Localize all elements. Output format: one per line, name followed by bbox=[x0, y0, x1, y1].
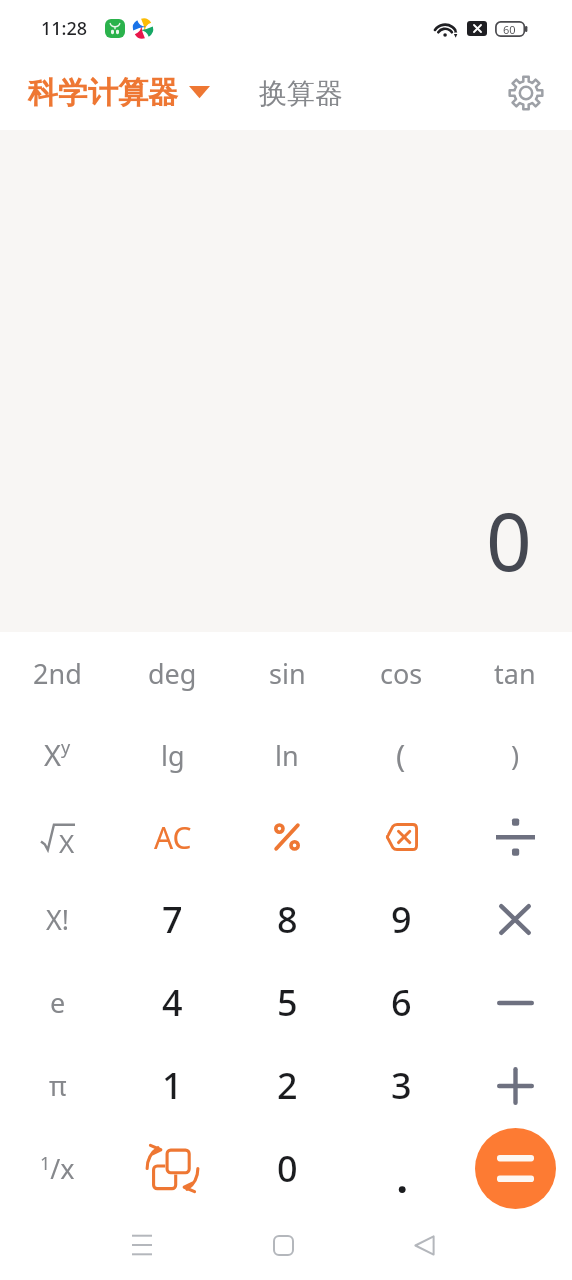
staticText: ln bbox=[275, 737, 299, 774]
staticText: 11:28 bbox=[41, 16, 88, 41]
button[interactable]: Back bbox=[396, 1217, 452, 1273]
staticText: e bbox=[50, 984, 66, 1021]
button[interactable]: 科学计算器 bbox=[28, 74, 210, 112]
staticText: 4 bbox=[162, 978, 183, 1027]
button[interactable]: AC bbox=[115, 796, 230, 878]
button[interactable]: tan bbox=[458, 632, 572, 714]
staticText: ) bbox=[511, 737, 520, 774]
button[interactable]: lg bbox=[115, 714, 230, 796]
staticText: 2nd bbox=[33, 655, 82, 692]
staticText: π bbox=[49, 1067, 67, 1104]
staticText: 0 bbox=[277, 1144, 298, 1193]
staticText: 60 bbox=[503, 22, 516, 37]
button[interactable]: Xy bbox=[0, 714, 115, 796]
staticText: 科学计算器 bbox=[28, 74, 178, 112]
staticText: lg bbox=[161, 737, 185, 774]
staticText: 5 bbox=[277, 978, 298, 1027]
button[interactable]: 4 bbox=[115, 961, 230, 1044]
button[interactable]: 8 bbox=[230, 878, 344, 961]
button[interactable]: 换算器 bbox=[259, 76, 343, 111]
button[interactable]: 9 bbox=[344, 878, 458, 961]
staticText: 1 bbox=[162, 1061, 183, 1110]
button[interactable]: 1 bbox=[115, 1044, 230, 1127]
staticText: 9 bbox=[391, 895, 412, 944]
button[interactable]: Home bbox=[255, 1217, 311, 1273]
button[interactable]: Delete bbox=[344, 796, 458, 878]
button[interactable]: deg bbox=[115, 632, 230, 714]
button[interactable]: 3 bbox=[344, 1044, 458, 1127]
staticText: 3 bbox=[391, 1061, 412, 1110]
button[interactable]: ln bbox=[230, 714, 344, 796]
button[interactable]: Settings bbox=[502, 69, 550, 117]
button[interactable]: Minus bbox=[458, 961, 572, 1044]
button[interactable]: 1/x bbox=[0, 1127, 115, 1210]
button[interactable]: Decimal point bbox=[344, 1127, 458, 1210]
staticText: 0 bbox=[486, 485, 532, 594]
staticText: 2 bbox=[277, 1061, 298, 1110]
button[interactable]: e bbox=[0, 961, 115, 1044]
staticText: AC bbox=[154, 817, 192, 858]
button[interactable]: π bbox=[0, 1044, 115, 1127]
button[interactable]: Equals bbox=[458, 1127, 572, 1210]
button[interactable]: 7 bbox=[115, 878, 230, 961]
button[interactable]: Recents bbox=[114, 1217, 170, 1273]
staticText: 8 bbox=[277, 895, 298, 944]
staticText: ( bbox=[396, 734, 406, 776]
button[interactable]: sin bbox=[230, 632, 344, 714]
staticText: tan bbox=[494, 655, 536, 692]
button[interactable]: 6 bbox=[344, 961, 458, 1044]
button[interactable]: 5 bbox=[230, 961, 344, 1044]
button[interactable]: X! bbox=[0, 878, 115, 961]
staticText: X! bbox=[46, 901, 70, 938]
staticText: deg bbox=[148, 655, 197, 692]
staticText: 7 bbox=[162, 895, 183, 944]
button[interactable]: Convert bbox=[115, 1127, 230, 1210]
staticText: 6 bbox=[391, 978, 412, 1027]
button[interactable]: cos bbox=[344, 632, 458, 714]
button[interactable]: ( bbox=[344, 714, 458, 796]
button[interactable]: Multiply bbox=[458, 878, 572, 961]
button[interactable]: X bbox=[0, 796, 115, 878]
button[interactable]: Percent bbox=[230, 796, 344, 878]
button[interactable]: Divide bbox=[458, 796, 572, 878]
button[interactable]: 2 bbox=[230, 1044, 344, 1127]
button[interactable]: 2nd bbox=[0, 632, 115, 714]
button[interactable]: Plus bbox=[458, 1044, 572, 1127]
staticText: cos bbox=[380, 655, 423, 692]
button[interactable]: ) bbox=[458, 714, 572, 796]
staticText: 1/x bbox=[40, 1150, 75, 1187]
staticText: X bbox=[59, 825, 75, 853]
staticText: Xy bbox=[44, 735, 71, 775]
staticText: sin bbox=[269, 655, 306, 692]
button[interactable]: 0 bbox=[230, 1127, 344, 1210]
